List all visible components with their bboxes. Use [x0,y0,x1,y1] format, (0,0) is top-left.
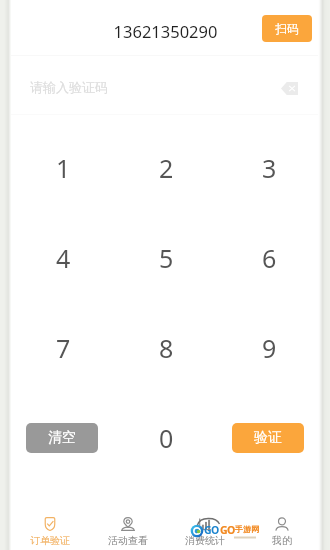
staticText: 扫码 [275,21,299,36]
button[interactable]: 0 [116,409,216,467]
staticText: 验证 [254,429,282,447]
button[interactable]: 验证 [232,423,304,453]
button[interactable]: 订单验证 [11,512,89,549]
staticText: 我的 [272,534,292,547]
button[interactable]: 2 [116,139,216,197]
button[interactable]: 清空 [26,423,98,453]
staticText: 0 [159,421,174,455]
button[interactable]: 7 [13,319,113,377]
staticText: 2 [159,151,174,185]
button[interactable]: 我的 [243,512,320,549]
staticText: 5 [159,241,174,275]
staticText: 9 [262,331,277,365]
staticText: 4 [56,241,71,275]
button[interactable]: 扫码 [262,15,312,42]
staticText: GO [220,523,235,537]
button[interactable]: 6 [219,229,319,287]
button[interactable]: Backspace [276,75,302,101]
staticText: 订单验证 [30,534,70,547]
staticText: 请输入验证码 [30,79,108,95]
staticText: 8 [159,331,174,365]
staticText: 手游网 [235,524,259,534]
button[interactable]: 8 [116,319,216,377]
button[interactable]: 9 [219,319,319,377]
staticText: 活动查看 [108,534,148,547]
button[interactable]: 1 [13,139,113,197]
staticText: 清空 [48,429,76,447]
staticText: 7 [56,331,71,365]
staticText: 6 [262,241,277,275]
button[interactable]: 5 [116,229,216,287]
button[interactable]: 4 [13,229,113,287]
button[interactable]: 3 [219,139,319,197]
staticText: 消费统计 [185,534,225,547]
staticText: 13621350290 [11,20,320,42]
staticText: GO [204,523,219,537]
button[interactable]: 消费统计 [166,512,243,549]
staticText: 3 [262,151,277,185]
staticText: 1 [56,151,71,185]
button[interactable]: 活动查看 [89,512,166,549]
